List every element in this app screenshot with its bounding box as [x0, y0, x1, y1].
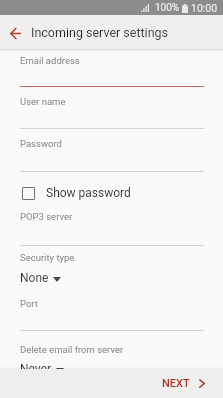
staticText: Port: [20, 298, 38, 309]
staticText: User name: [20, 96, 66, 107]
staticText: Password: [20, 138, 62, 149]
staticText: Never: [20, 362, 52, 376]
button[interactable]: Show password: [0, 185, 223, 202]
staticText: NEXT: [162, 377, 190, 390]
staticText: 10:00: [191, 2, 218, 14]
button[interactable]: NEXT: [148, 371, 223, 396]
staticText: Email address: [20, 55, 80, 66]
staticText: 100%: [155, 2, 180, 14]
staticText: POP3 server: [20, 211, 73, 222]
staticText: Delete email from server: [20, 344, 124, 355]
staticText: None: [20, 271, 49, 285]
staticText: Show password: [46, 186, 131, 200]
staticText: Incoming server settings: [31, 25, 169, 40]
button[interactable]: Navigate up: [1, 18, 29, 46]
staticText: Security type: [20, 252, 75, 263]
